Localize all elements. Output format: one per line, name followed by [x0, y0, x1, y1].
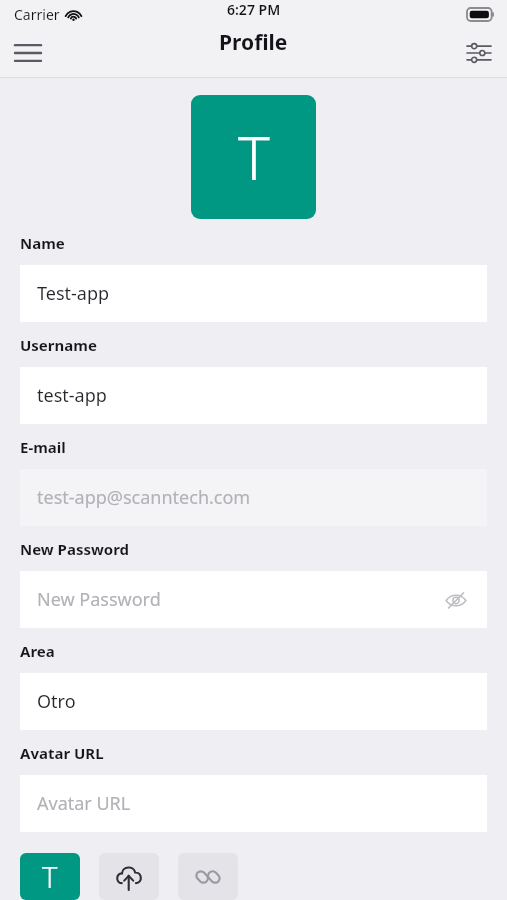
staticText: T — [42, 857, 58, 896]
button[interactable]: Use initials avatar — [20, 853, 80, 900]
staticText: E-mail — [20, 437, 66, 457]
button[interactable]: Show password — [439, 583, 473, 617]
staticText: New Password — [37, 587, 161, 612]
staticText: Otro — [37, 689, 76, 714]
staticText: test-app@scanntech.com — [37, 485, 251, 510]
button[interactable]: test-app@scanntech.com — [20, 469, 487, 526]
staticText: Carrier — [14, 5, 60, 24]
staticText: Test-app — [37, 281, 110, 306]
staticText: Profile — [219, 28, 288, 57]
staticText: Username — [20, 335, 97, 355]
staticText: 6:27 PM — [227, 0, 281, 19]
button[interactable]: Menu — [0, 28, 56, 78]
staticText: T — [238, 116, 270, 198]
button[interactable]: Avatar — [191, 95, 316, 219]
staticText: Name — [20, 233, 65, 253]
staticText: Area — [20, 641, 55, 661]
button[interactable]: Profile — [0, 28, 507, 57]
staticText: Avatar URL — [37, 791, 131, 816]
button[interactable]: Avatar URL — [20, 775, 487, 832]
button[interactable]: Upload image — [99, 853, 159, 900]
button[interactable]: Settings — [451, 28, 507, 78]
button[interactable]: Avatar from link — [178, 853, 238, 900]
staticText: New Password — [20, 539, 130, 559]
staticText: Avatar URL — [20, 743, 104, 763]
button[interactable]: test-app — [20, 367, 487, 424]
staticText: test-app — [37, 383, 107, 408]
button[interactable]: Otro — [20, 673, 487, 730]
button[interactable]: New Password — [20, 571, 487, 628]
button[interactable]: Test-app — [20, 265, 487, 322]
